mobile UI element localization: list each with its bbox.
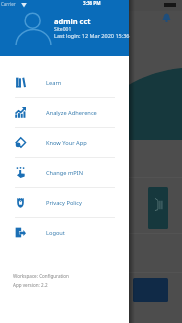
other: Notifications — [162, 13, 171, 22]
staticText: Change mPIN — [46, 169, 84, 177]
staticText: Workspace: Configuration — [13, 273, 69, 279]
staticText: Last login: 12 Mar 2020 15:36 — [54, 32, 130, 39]
staticText: Know Your App — [46, 139, 87, 147]
button[interactable]: Learn — [0, 68, 129, 97]
staticText: Carrier — [1, 1, 16, 7]
button[interactable]: Change mPIN — [0, 158, 129, 187]
button[interactable]: Analyze Adherence — [0, 98, 129, 127]
staticText: 3:36 PM — [83, 0, 101, 6]
staticText: Analyze Adherence — [46, 109, 97, 117]
staticText: Privacy Policy — [46, 199, 82, 207]
staticText: admin cct — [54, 16, 91, 26]
button[interactable]: Logout — [0, 218, 129, 247]
staticText: App version: 2.2 — [13, 282, 48, 288]
button[interactable]: Privacy Policy — [0, 188, 129, 217]
staticText: Learn — [46, 79, 62, 87]
staticText: Site001 — [54, 26, 72, 33]
staticText: Logout — [46, 229, 65, 237]
button[interactable]: Know Your App — [0, 128, 129, 157]
